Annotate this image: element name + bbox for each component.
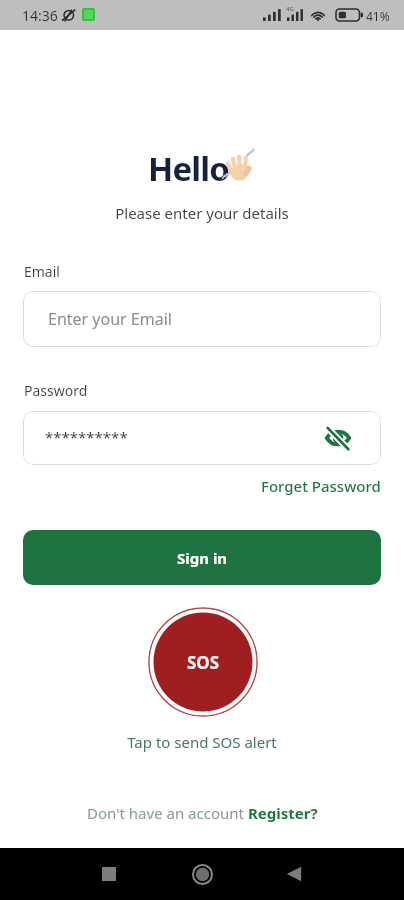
staticText: Please enter your details [0, 203, 404, 223]
staticText: Don't have an account [87, 803, 248, 823]
button[interactable]: Recents [89, 854, 129, 894]
staticText: Sign in [177, 548, 228, 568]
staticText: 41% [366, 8, 390, 24]
staticText: Enter your Email [48, 308, 172, 330]
button[interactable]: Register? [248, 803, 318, 823]
staticText: 4G [286, 5, 294, 13]
button[interactable]: Home [182, 854, 222, 894]
button[interactable]: SOS [148, 607, 258, 717]
button[interactable]: ********** [23, 411, 381, 465]
button[interactable]: Back [274, 854, 314, 894]
button[interactable]: Show password [321, 421, 355, 455]
button[interactable]: Forget Password [261, 476, 381, 496]
staticText: SOS [187, 651, 220, 674]
button[interactable]: Enter your Email [23, 291, 381, 347]
button[interactable]: Tap to send SOS alert [127, 732, 277, 752]
staticText: 14:36 [22, 6, 58, 25]
staticText: Password [24, 381, 88, 400]
staticText: ********** [45, 427, 128, 447]
button[interactable]: Sign in [23, 530, 381, 585]
staticText: Email [24, 262, 60, 281]
staticText: Hello [148, 146, 229, 191]
